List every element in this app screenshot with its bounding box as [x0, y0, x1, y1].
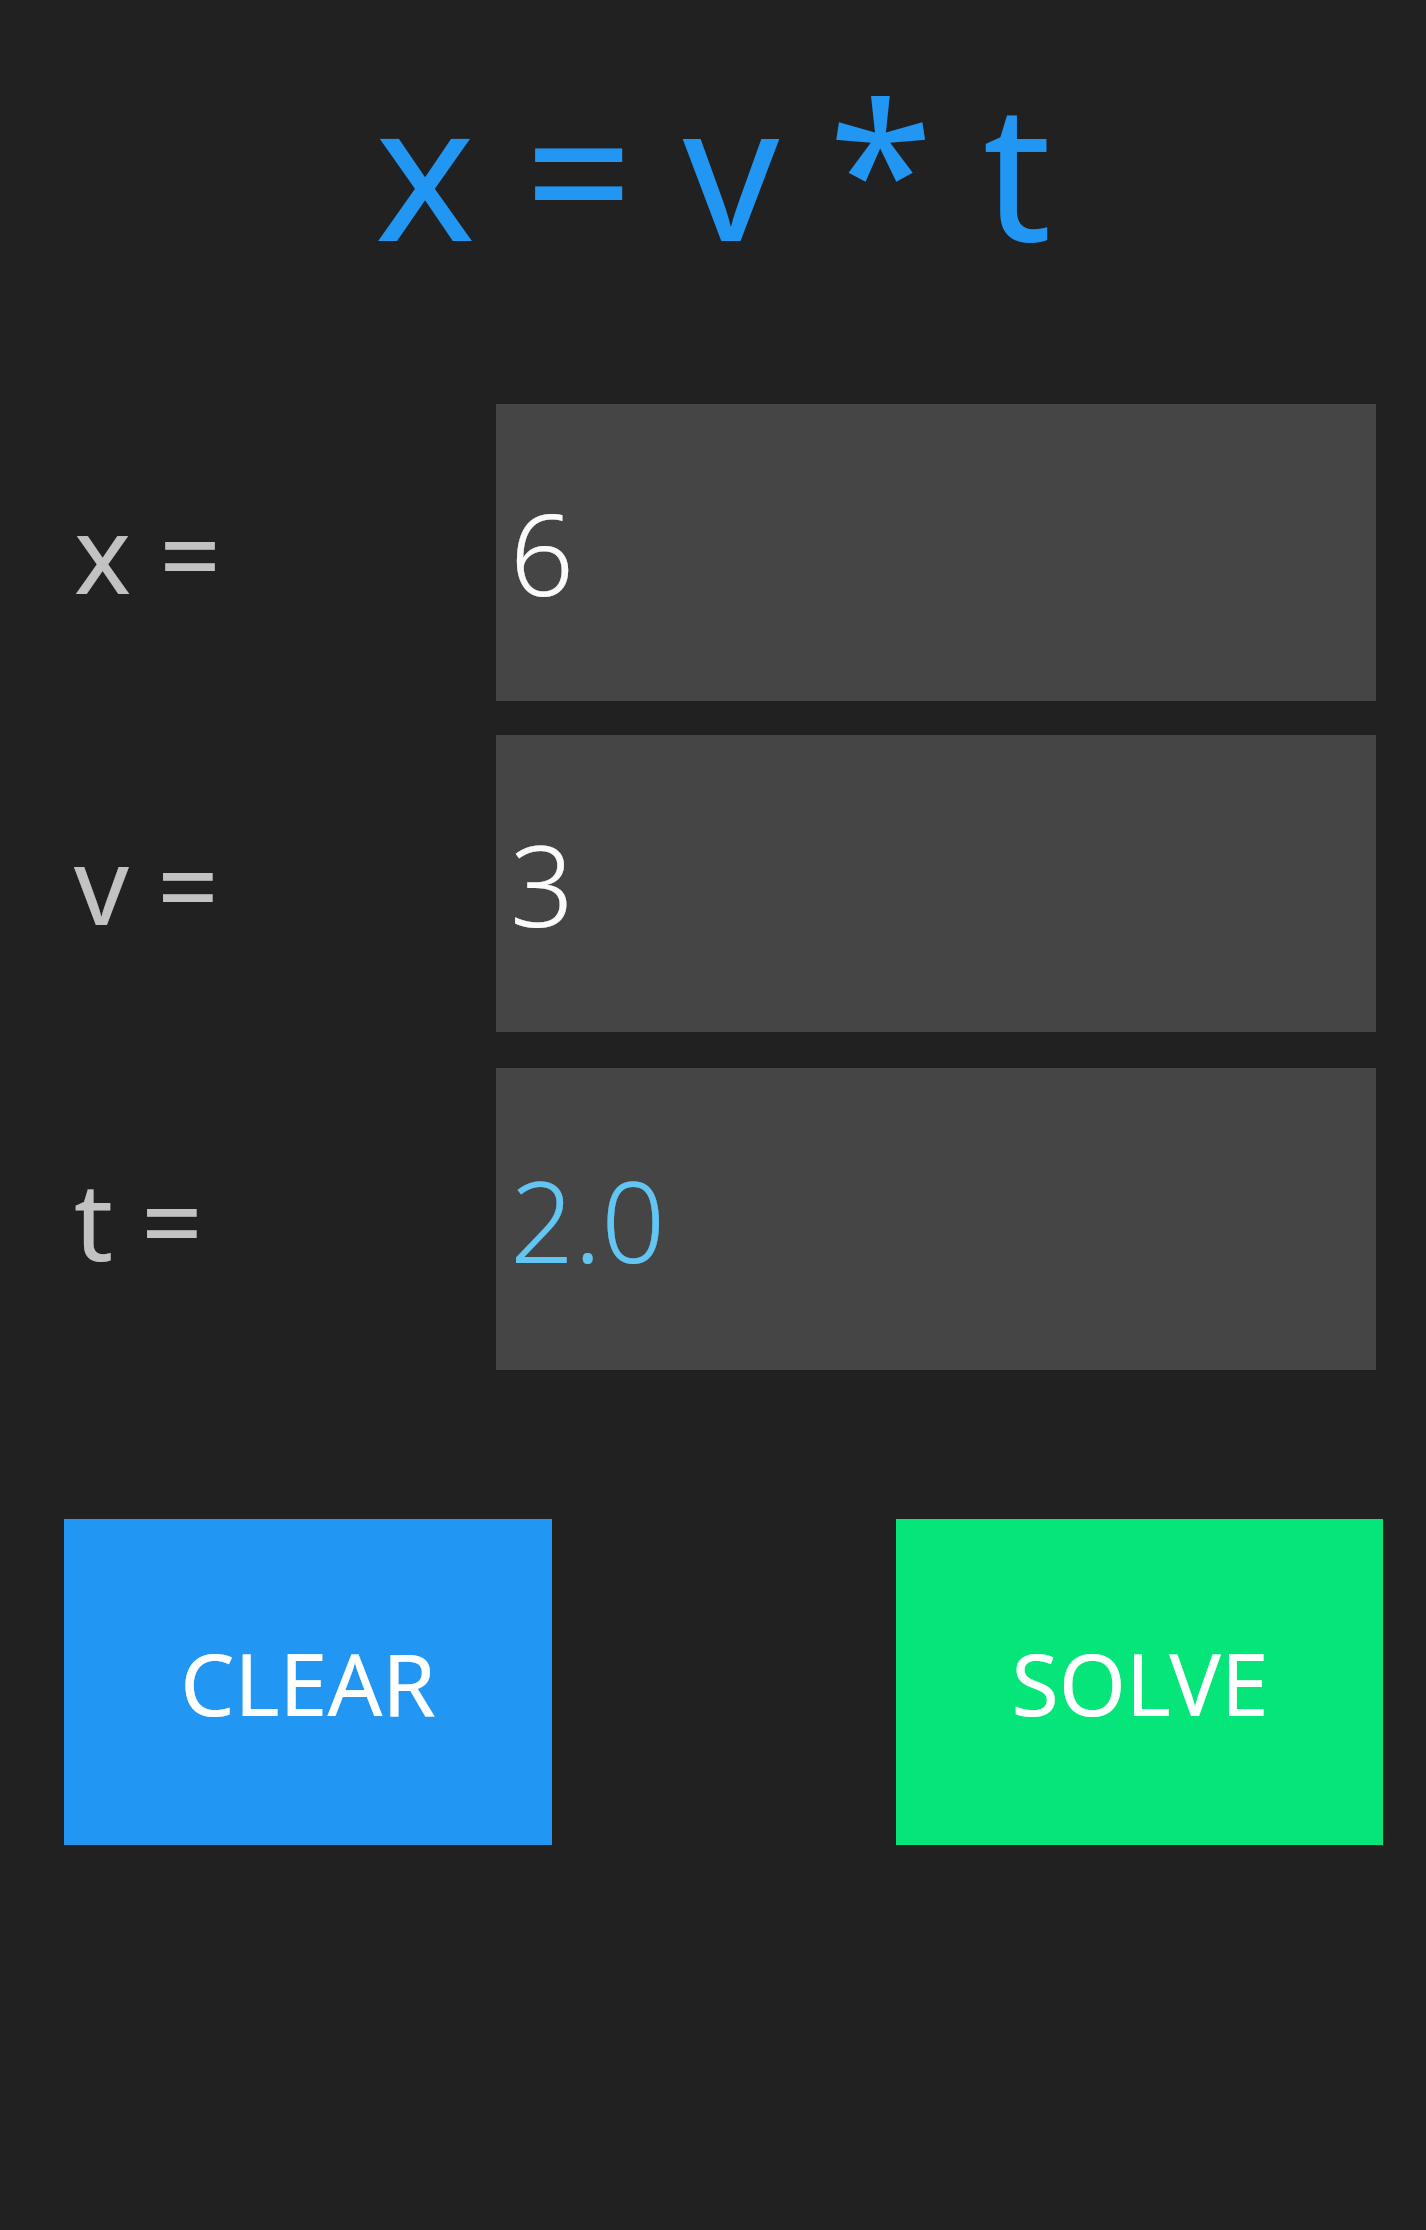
- staticText: CLEAR: [180, 1624, 436, 1741]
- button[interactable]: SOLVE: [896, 1519, 1383, 1845]
- staticText: SOLVE: [1011, 1624, 1269, 1741]
- staticText: 3: [510, 807, 1376, 960]
- staticText: t =: [74, 1146, 203, 1293]
- button[interactable]: CLEAR: [64, 1519, 552, 1845]
- staticText: 6: [510, 476, 1376, 629]
- staticText: v =: [74, 810, 219, 957]
- button[interactable]: 3: [496, 735, 1376, 1032]
- button[interactable]: 2.0: [496, 1068, 1376, 1370]
- staticText: x =: [74, 479, 221, 626]
- staticText: x = v * t: [0, 38, 1426, 297]
- staticText: 2.0: [510, 1143, 1376, 1296]
- button[interactable]: 6: [496, 404, 1376, 701]
